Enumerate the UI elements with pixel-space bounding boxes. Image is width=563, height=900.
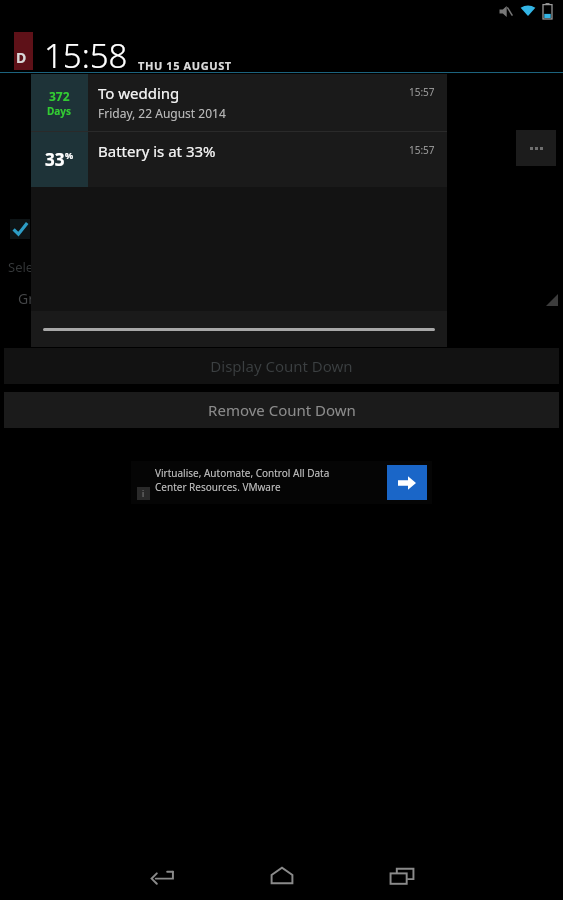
staticText: Friday, 22 August 2014 bbox=[98, 105, 226, 121]
button[interactable]: Close notification shade bbox=[31, 311, 447, 347]
staticText: 15:57 bbox=[409, 85, 435, 99]
button[interactable]: Remove Count Down bbox=[4, 392, 559, 428]
staticText: Center Resources. VMware bbox=[155, 480, 281, 494]
staticText: 15:57 bbox=[409, 143, 435, 157]
staticText: 15:58 bbox=[44, 33, 128, 78]
staticText: Battery is at 33% bbox=[98, 141, 216, 161]
staticText: Display Count Down bbox=[210, 356, 353, 376]
staticText: Green Text Icons bbox=[18, 289, 128, 308]
button[interactable]: More options bbox=[516, 130, 556, 166]
staticText: % bbox=[65, 149, 74, 161]
button[interactable]: Virtualise, Automate, Control All Data bbox=[131, 461, 432, 504]
staticText: Days bbox=[47, 104, 72, 118]
button[interactable]: Open advertisement bbox=[387, 465, 427, 500]
staticText: Virtualise, Automate, Control All Data bbox=[155, 466, 330, 480]
button[interactable]: Back bbox=[102, 852, 222, 900]
staticText: 33 bbox=[45, 148, 65, 171]
staticText: Select Icon Type bbox=[8, 258, 107, 276]
button[interactable]: 372 bbox=[31, 74, 447, 131]
button[interactable]: 33 bbox=[31, 132, 447, 187]
button[interactable]: Display Count Down bbox=[4, 348, 559, 384]
staticText: To wedding bbox=[98, 83, 180, 103]
button[interactable]: Home bbox=[222, 852, 342, 900]
staticText: i bbox=[142, 488, 145, 499]
staticText: D bbox=[16, 48, 27, 67]
staticText: Remove Count Down bbox=[208, 400, 356, 420]
staticText: THU 15 AUGUST bbox=[138, 58, 232, 73]
button[interactable]: Recent apps bbox=[342, 852, 462, 900]
staticText: 372 bbox=[49, 88, 70, 104]
